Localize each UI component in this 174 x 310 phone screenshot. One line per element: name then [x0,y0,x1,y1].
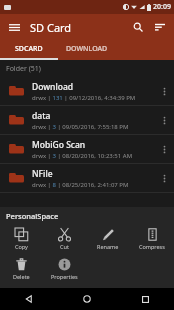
button[interactable]: Open navigation drawer [3,16,25,38]
staticText: DOWNLOAD [66,44,108,54]
staticText: SDCARD [15,44,43,54]
staticText: NFile [32,168,53,180]
staticText: drwx | 8 | 08/25/2016, 2:41:07 PM [32,181,129,189]
button[interactable]: Sort [149,16,171,38]
button[interactable]: Download [0,77,174,105]
button[interactable]: Back [0,288,58,310]
button[interactable]: More options for NFile [154,164,174,192]
staticText: PersonalSpace [6,211,59,221]
staticText: Download [32,81,74,93]
button[interactable]: DOWNLOAD [58,40,116,58]
staticText: drwx | 3 | 08/20/2016, 10:23:51 AM [32,152,133,160]
button[interactable]: More options for data [154,106,174,134]
staticText: data [32,110,51,122]
button[interactable]: Properties [43,254,86,284]
staticText: drwx | 3 | 09/05/2016, 7:55:18 PM [32,123,129,131]
staticText: Properties [51,273,78,280]
button[interactable]: Recent apps [116,288,174,310]
button[interactable]: Rename [86,224,130,254]
button[interactable]: Copy [0,224,43,254]
button[interactable]: Cut [43,224,86,254]
button[interactable]: Home [58,288,116,310]
button[interactable]: SDCARD [0,40,58,58]
button[interactable]: data [0,106,174,134]
button[interactable]: Compress [130,224,174,254]
button[interactable]: More options for Download [154,77,174,105]
staticText: MobiGo Scan [32,139,86,151]
staticText: 20:09 [153,2,171,12]
staticText: SD Card [30,20,72,35]
staticText: drwx | 131 | 09/12/2016, 4:34:39 PM [32,94,136,102]
staticText: Cut [60,243,69,250]
staticText: Folder (51) [6,64,41,74]
button[interactable]: More options for MobiGo Scan [154,135,174,163]
staticText: Delete [13,273,30,280]
staticText: Rename [97,243,119,250]
button[interactable]: Delete [0,254,43,284]
button[interactable]: MobiGo Scan [0,135,174,163]
button[interactable]: Search [127,16,149,38]
staticText: Copy [15,243,28,250]
button[interactable]: NFile [0,164,174,192]
staticText: Compress [139,243,165,250]
